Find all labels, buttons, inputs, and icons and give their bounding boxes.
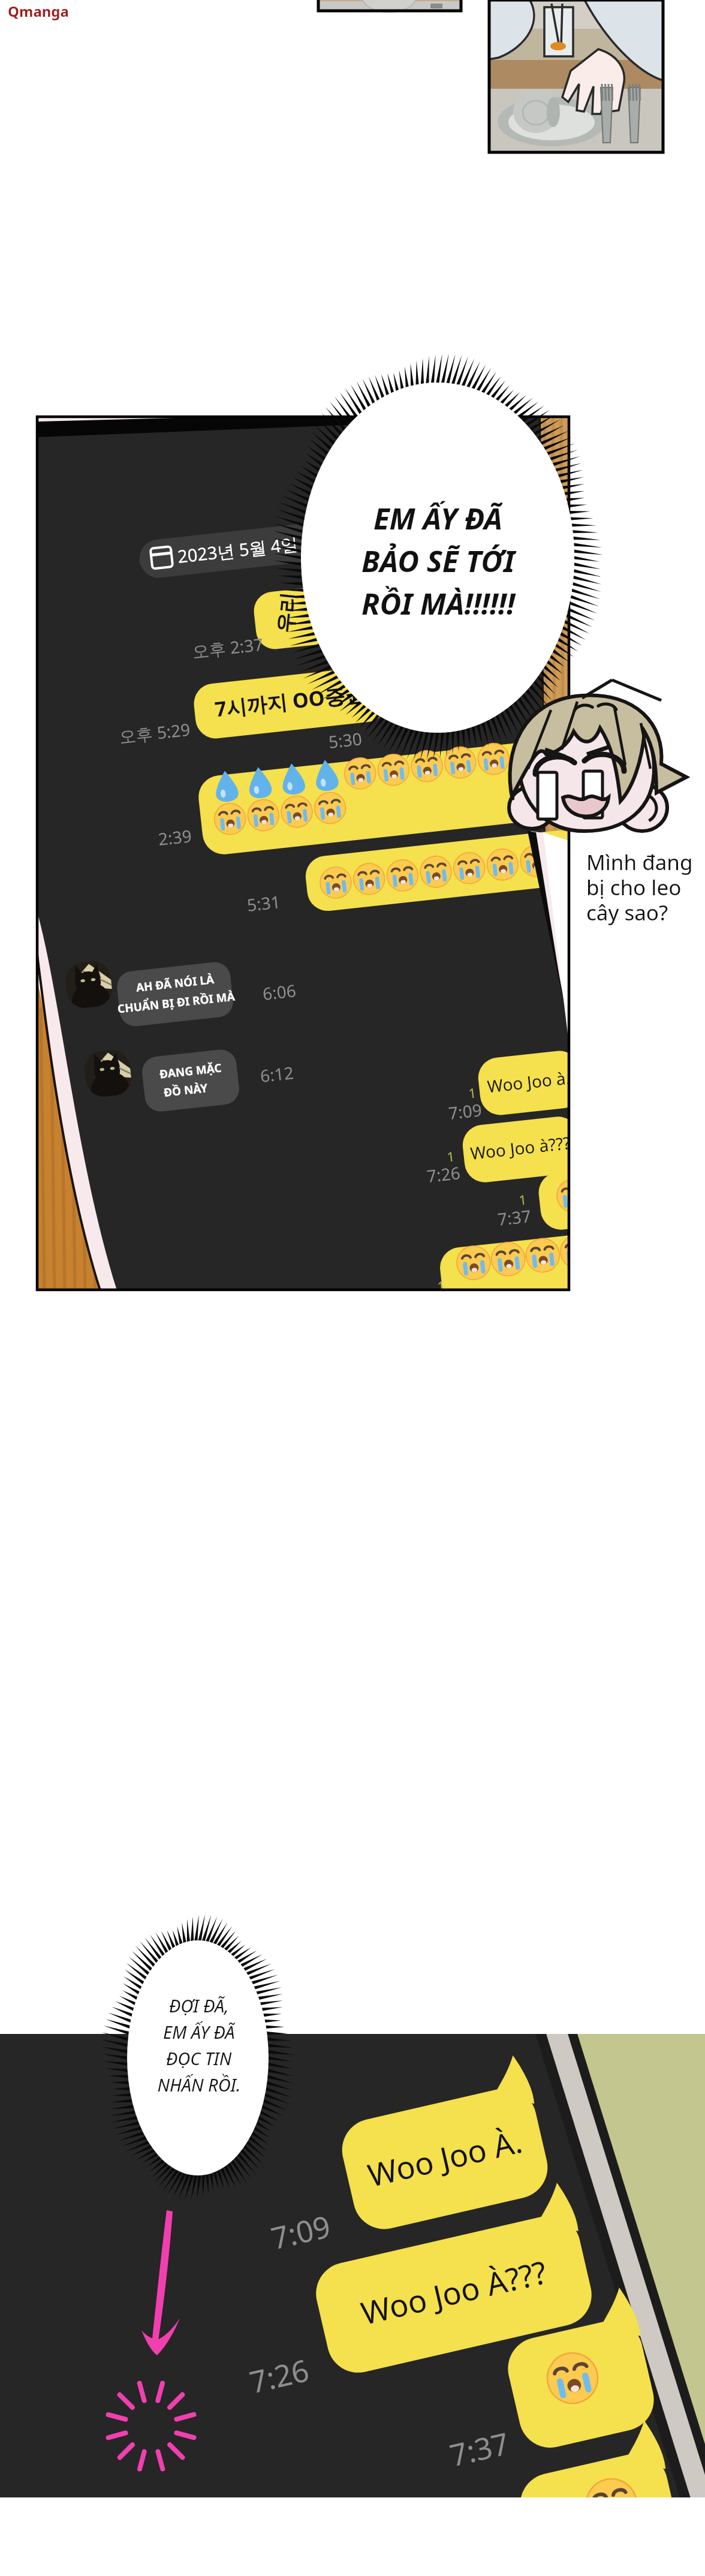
button[interactable]: Comic page, tap to show reader controls	[0, 0, 705, 2576]
button[interactable]: Panel: phone showing the chat with Woo J…	[25, 278, 379, 860]
button[interactable]: Panel: hand reaching over the table	[326, 0, 442, 101]
